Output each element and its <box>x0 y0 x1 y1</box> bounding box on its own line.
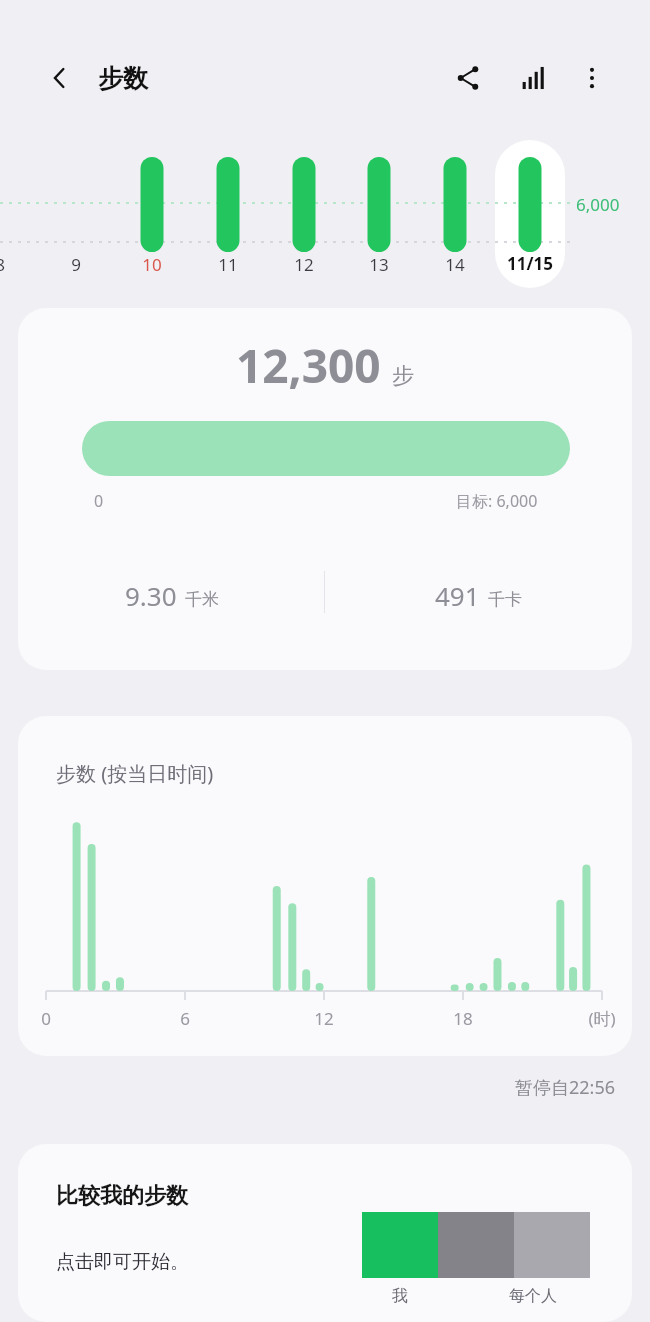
button[interactable]: Back <box>36 54 84 102</box>
button[interactable]: 8 <box>0 253 20 276</box>
staticText: 491 <box>435 578 480 613</box>
staticText: 我 <box>362 1286 438 1306</box>
button[interactable]: 10 <box>132 253 172 276</box>
button[interactable]: 11/15 <box>495 140 565 288</box>
button[interactable]: Share <box>444 54 492 102</box>
staticText: 9.30 <box>125 578 177 613</box>
staticText: 12,300 <box>236 334 381 397</box>
button[interactable]: 12,300 <box>18 308 632 670</box>
button[interactable]: 步数 (按当日时间) <box>18 716 632 1056</box>
button[interactable]: More options <box>568 54 616 102</box>
staticText: 11/15 <box>507 252 553 275</box>
button[interactable]: 11 <box>208 253 248 276</box>
staticText: 千米 <box>185 589 219 610</box>
staticText: 步数 (按当日时间) <box>56 760 214 787</box>
staticText: 11 <box>218 253 238 276</box>
staticText: 目标: 6,000 <box>456 490 538 512</box>
staticText: 步 <box>392 362 414 390</box>
staticText: 步数 <box>98 63 148 94</box>
staticText: 千卡 <box>488 589 522 610</box>
staticText: 0 <box>22 1007 70 1030</box>
staticText: (时) <box>578 1007 626 1030</box>
staticText: 10 <box>142 253 162 276</box>
staticText: 13 <box>369 253 389 276</box>
button[interactable]: 9 <box>56 253 96 276</box>
staticText: 每个人 <box>476 1286 590 1306</box>
staticText: 暂停自22:56 <box>515 1075 616 1100</box>
staticText: 9 <box>71 253 81 276</box>
staticText: 12 <box>300 1007 348 1030</box>
button[interactable]: 比较我的步数 <box>18 1144 632 1322</box>
button[interactable]: Chart <box>508 54 556 102</box>
staticText: 比较我的步数 <box>56 1182 188 1210</box>
staticText: 18 <box>439 1007 487 1030</box>
button[interactable]: 11/15 <box>500 252 560 275</box>
button[interactable]: 12 <box>284 253 324 276</box>
staticText: 0 <box>94 490 104 512</box>
staticText: 8 <box>0 253 5 276</box>
staticText: 14 <box>445 253 465 276</box>
button[interactable]: 14 <box>435 253 475 276</box>
staticText: 12 <box>294 253 314 276</box>
staticText: 6,000 <box>576 193 620 216</box>
staticText: 点击即可开始。 <box>56 1250 189 1274</box>
button[interactable]: 13 <box>359 253 399 276</box>
staticText: 6 <box>161 1007 209 1030</box>
